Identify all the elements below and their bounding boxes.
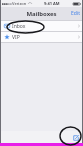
- staticText: Inbox: [12, 23, 26, 30]
- button[interactable]: VIP: [0, 32, 83, 42]
- button[interactable]: Edit: [68, 8, 83, 19]
- button[interactable]: Inbox: [0, 21, 83, 31]
- button[interactable]: Compose: [71, 133, 80, 142]
- staticText: Verizon: [12, 1, 27, 6]
- staticText: Mailboxes: [26, 10, 57, 18]
- staticText: VIP: [12, 34, 20, 41]
- staticText: 9:41 AM: [44, 1, 60, 6]
- staticText: Edit: [71, 10, 80, 17]
